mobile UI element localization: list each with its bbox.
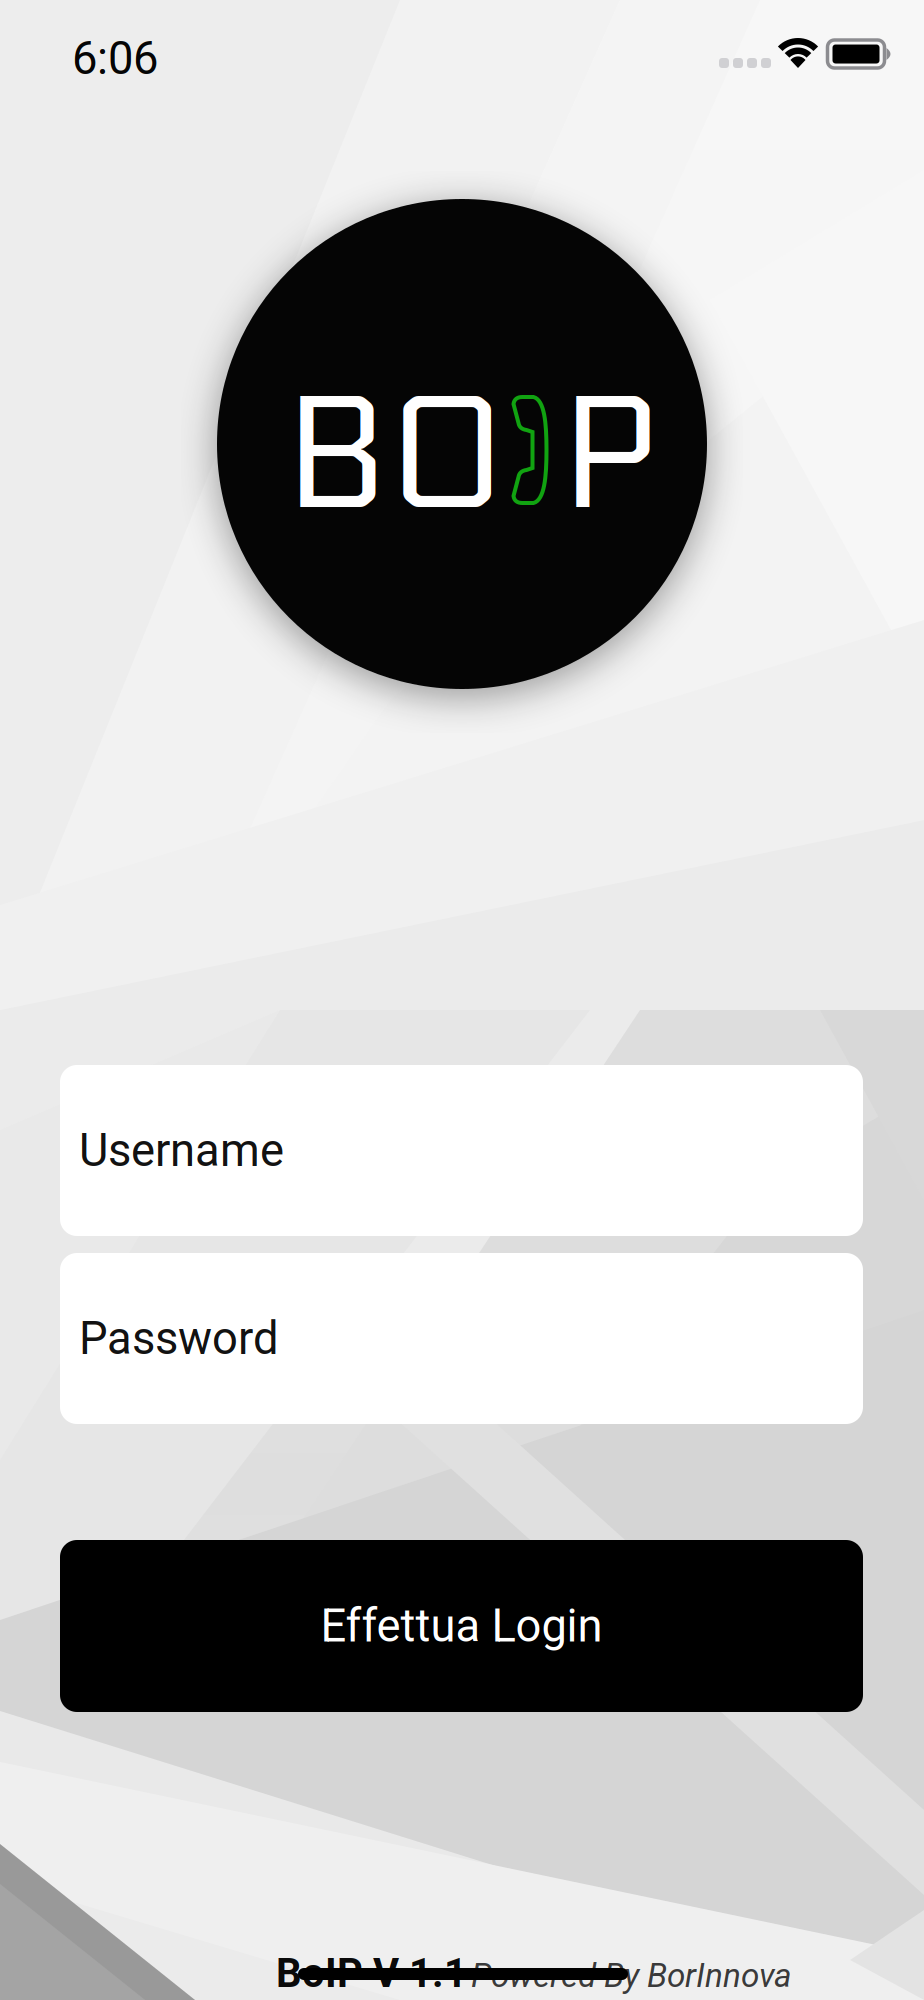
staticText: 6:06 [72,32,158,85]
button[interactable]: Username [60,1065,863,1236]
staticText: P [560,364,661,550]
staticText: BO [284,364,506,550]
button[interactable]: Password [60,1253,863,1424]
staticText: Password [79,1312,279,1365]
staticText: Effettua Login [320,1599,602,1652]
staticText: BoIP V 1.1 [276,1950,467,1997]
staticText: Username [79,1124,284,1177]
button[interactable]: Effettua Login [60,1540,863,1712]
staticText: Powered By BorInnova [471,1956,792,1995]
